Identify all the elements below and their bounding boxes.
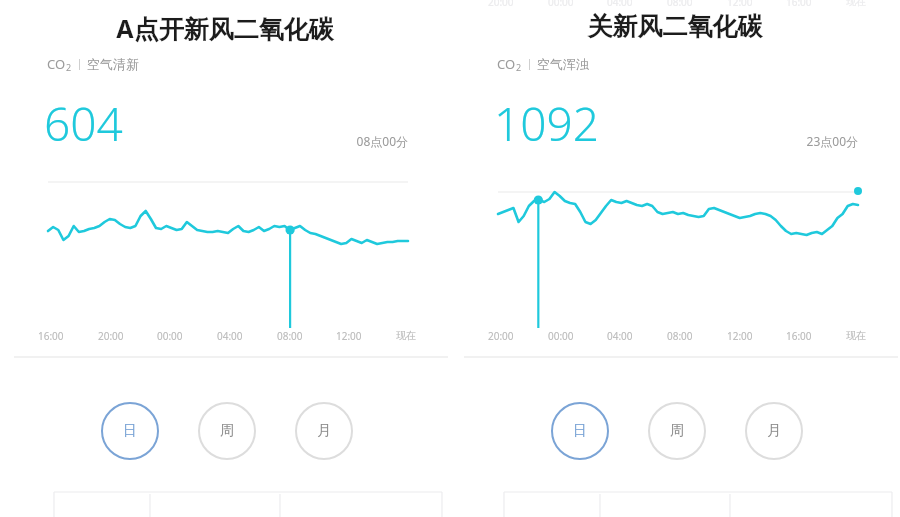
staticText: 2: [516, 61, 522, 73]
staticText: 604: [44, 92, 123, 155]
staticText: 20:00: [98, 329, 124, 343]
button[interactable]: 周: [648, 402, 706, 460]
staticText: 20:00: [488, 329, 514, 343]
button[interactable]: 日: [101, 402, 159, 460]
staticText: CO: [47, 55, 66, 73]
staticText: 20:00: [488, 0, 514, 9]
staticText: 23点00分: [780, 133, 858, 149]
staticText: CO: [497, 55, 516, 73]
staticText: 关新风二氧化碳: [450, 11, 900, 42]
button[interactable]: 周: [198, 402, 256, 460]
staticText: 16:00: [38, 329, 64, 343]
staticText: 月: [767, 422, 781, 440]
staticText: 现在: [846, 329, 866, 342]
staticText: 周: [220, 422, 234, 440]
staticText: 08:00: [667, 329, 693, 343]
staticText: 08:00: [277, 329, 303, 343]
staticText: 08:00: [667, 0, 693, 9]
staticText: 12:00: [727, 0, 753, 9]
staticText: 周: [670, 422, 684, 440]
staticText: 现在: [396, 329, 416, 342]
staticText: 16:00: [786, 0, 812, 9]
staticText: 16:00: [786, 329, 812, 343]
staticText: 日: [573, 422, 587, 440]
staticText: 现在: [846, 0, 866, 8]
staticText: 04:00: [607, 329, 633, 343]
button[interactable]: 月: [745, 402, 803, 460]
staticText: 空气清新: [87, 56, 139, 72]
staticText: 12:00: [727, 329, 753, 343]
staticText: 00:00: [157, 329, 183, 343]
button[interactable]: 日: [551, 402, 609, 460]
staticText: 08点00分: [330, 133, 408, 149]
staticText: 04:00: [607, 0, 633, 9]
button[interactable]: 月: [295, 402, 353, 460]
staticText: 1092: [494, 92, 600, 155]
staticText: 2: [66, 61, 72, 73]
staticText: 日: [123, 422, 137, 440]
staticText: 00:00: [548, 329, 574, 343]
staticText: 12:00: [336, 329, 362, 343]
staticText: 月: [317, 422, 331, 440]
staticText: 00:00: [548, 0, 574, 9]
staticText: A点开新风二氧化碳: [0, 11, 450, 45]
staticText: 空气浑浊: [537, 56, 589, 72]
staticText: 04:00: [217, 329, 243, 343]
